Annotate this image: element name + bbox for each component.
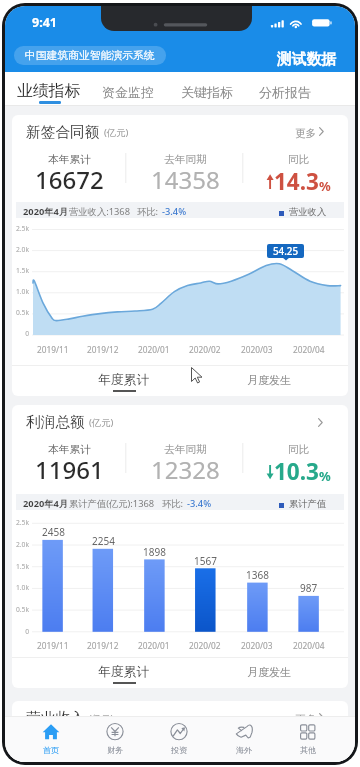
staticText: 2254: [92, 534, 115, 548]
staticText: 去年同期: [164, 443, 207, 456]
staticText: 1.5k: [12, 266, 29, 275]
staticText: 财务: [107, 745, 124, 755]
staticText: (亿元): [89, 416, 114, 429]
staticText: 业绩指标: [17, 81, 81, 101]
button[interactable]: 中国建筑商业智能演示系统: [14, 46, 166, 65]
staticText: 同比: [288, 443, 310, 456]
staticText: 2.0k: [12, 245, 29, 254]
staticText: 987: [300, 581, 318, 595]
staticText: %: [319, 177, 331, 195]
button[interactable]: 首页: [19, 716, 83, 762]
button[interactable]: 更多: [289, 707, 330, 731]
staticText: -3.4%: [162, 205, 187, 218]
staticText: 1368: [246, 568, 269, 582]
staticText: 16672: [35, 163, 104, 196]
staticText: 2020/04: [293, 344, 325, 355]
button[interactable]: 业绩指标: [13, 72, 85, 106]
staticText: 2.5k: [12, 224, 29, 233]
staticText: 14358: [151, 163, 220, 196]
button[interactable]: 投资: [147, 716, 211, 762]
staticText: (亿元): [104, 126, 129, 139]
staticText: 中国建筑商业智能演示系统: [25, 49, 155, 63]
staticText: 11961: [35, 453, 104, 486]
staticText: -3.4%: [187, 497, 212, 510]
staticText: 0.5k: [12, 605, 29, 614]
staticText: %: [319, 467, 331, 485]
staticText: 0: [12, 627, 29, 636]
staticText: 累计产值(亿元):1368: [69, 497, 155, 510]
staticText: 营业收入: [26, 709, 85, 728]
staticText: 关键指标: [181, 84, 233, 100]
button[interactable]: 月度发生: [229, 661, 309, 687]
staticText: 2020年4月: [23, 205, 69, 218]
staticText: 分析报告: [259, 84, 311, 100]
staticText: 2.5k: [12, 518, 29, 527]
staticText: 海外: [236, 745, 253, 755]
staticText: 环比:: [162, 497, 184, 510]
button[interactable]: 查看详情: [308, 410, 332, 434]
staticText: 2020/02: [189, 640, 221, 651]
staticText: (亿元): [89, 712, 114, 725]
staticText: 资金监控: [102, 84, 154, 100]
staticText: 累计产值: [289, 498, 327, 510]
button[interactable]: 分析报告: [249, 72, 321, 106]
staticText: 2019/11: [37, 640, 69, 651]
staticText: 营业收入:1368: [69, 205, 130, 218]
staticText: 2020/01: [138, 344, 170, 355]
button[interactable]: 更多: [289, 121, 330, 145]
staticText: 2.0k: [12, 540, 29, 549]
staticText: 其他: [300, 745, 317, 755]
button[interactable]: 资金监控: [92, 72, 164, 106]
staticText: 月度发生: [247, 373, 291, 387]
staticText: 月度发生: [247, 665, 291, 679]
staticText: 环比:: [137, 205, 159, 218]
staticText: 测试数据: [277, 50, 337, 69]
button[interactable]: 年度累计: [84, 369, 164, 395]
button[interactable]: 财务: [83, 716, 147, 762]
staticText: 同比: [288, 153, 310, 166]
staticText: 2019/11: [37, 344, 69, 355]
button[interactable]: 海外: [212, 716, 276, 762]
staticText: 利润总额: [26, 413, 85, 432]
staticText: 0.5k: [12, 308, 29, 317]
staticText: 2020/01: [138, 640, 170, 651]
staticText: 2019/12: [87, 344, 119, 355]
staticText: 更多: [295, 127, 317, 140]
staticText: 54.25: [273, 245, 299, 258]
button[interactable]: 其他: [276, 716, 340, 762]
staticText: 0: [12, 329, 29, 338]
staticText: 2020/04: [293, 640, 325, 651]
staticText: 14.3: [274, 166, 319, 197]
staticText: 年度累计: [98, 664, 150, 680]
staticText: 2019/12: [87, 640, 119, 651]
staticText: 2020/02: [189, 344, 221, 355]
button[interactable]: 年度累计: [84, 661, 164, 687]
staticText: 营业收入: [289, 206, 327, 218]
staticText: 9:41: [32, 14, 57, 31]
staticText: 2020/03: [241, 344, 273, 355]
staticText: 本年累计: [48, 153, 91, 166]
staticText: 投资: [171, 745, 188, 755]
staticText: 1.0k: [12, 287, 29, 296]
staticText: 1898: [143, 545, 166, 559]
staticText: 年度累计: [98, 372, 150, 388]
button[interactable]: 月度发生: [229, 369, 309, 395]
staticText: 1567: [194, 554, 217, 568]
staticText: 10.3: [274, 456, 319, 487]
staticText: 2020年4月: [23, 497, 69, 510]
staticText: 更多: [295, 713, 317, 726]
staticText: 2020/03: [241, 640, 273, 651]
staticText: 1.0k: [12, 583, 29, 592]
staticText: 2458: [42, 525, 65, 539]
staticText: 本年累计: [48, 443, 91, 456]
staticText: 去年同期: [164, 153, 207, 166]
staticText: 首页: [43, 745, 60, 755]
staticText: 1.5k: [12, 562, 29, 571]
button[interactable]: 测试数据: [273, 46, 341, 72]
staticText: 12328: [151, 453, 220, 486]
staticText: 新签合同额: [26, 123, 100, 142]
button[interactable]: 关键指标: [171, 72, 243, 106]
